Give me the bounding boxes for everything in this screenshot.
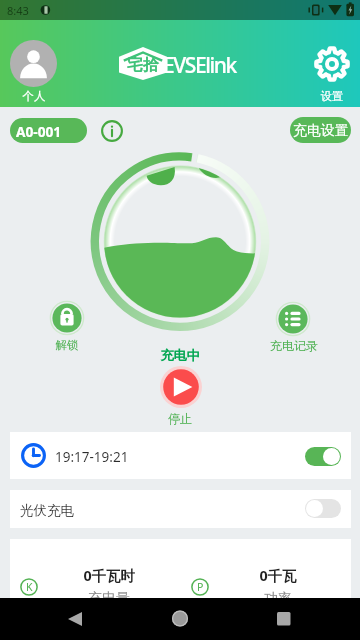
button[interactable]: Profile — [10, 40, 57, 87]
staticText: 0千瓦时 — [44, 566, 174, 586]
staticText: 8:43 — [7, 3, 29, 18]
button[interactable]: Toggle — [305, 499, 341, 518]
staticText: 充电中 — [120, 347, 240, 364]
staticText: 光伏充电 — [20, 502, 74, 519]
staticText: A0-001 — [16, 122, 62, 141]
staticText: 个人 — [4, 89, 64, 103]
staticText: 停止 — [140, 411, 220, 426]
staticText: 19:17-19:21 — [55, 448, 129, 466]
button[interactable]: Unlock — [50, 301, 84, 335]
staticText: EVSElink — [163, 51, 236, 80]
button[interactable]: Settings — [314, 46, 350, 82]
staticText: K — [26, 580, 33, 594]
button[interactable]: 充电设置 — [290, 117, 351, 143]
staticText: 0千瓦 — [213, 566, 343, 586]
button[interactable]: Information — [101, 120, 123, 142]
staticText: 充电量 — [44, 590, 174, 608]
button[interactable]: Toggle — [305, 447, 341, 466]
staticText: 充电记录 — [254, 338, 334, 353]
staticText: 功率 — [213, 590, 343, 608]
staticText: P — [197, 580, 204, 594]
button[interactable] — [10, 432, 351, 479]
button[interactable] — [10, 490, 351, 528]
staticText: 充电设置 — [293, 122, 349, 140]
button[interactable]: Stop charging — [160, 366, 202, 408]
staticText: 设置 — [302, 89, 360, 103]
button[interactable] — [10, 118, 87, 143]
staticText: 宅拾 — [121, 55, 165, 75]
button[interactable]: Charging records — [276, 302, 310, 336]
staticText: 解锁 — [32, 338, 102, 352]
